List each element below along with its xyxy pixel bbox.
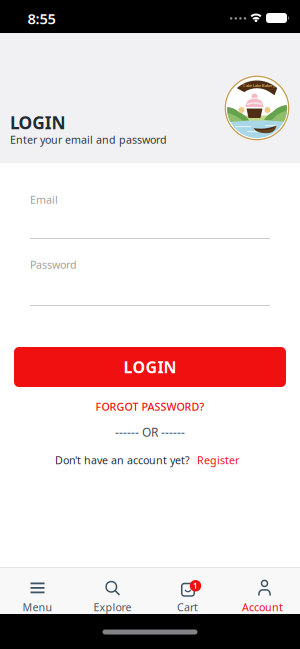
staticText: FORGOT PASSWORD? — [95, 399, 204, 414]
button[interactable]: Account — [225, 567, 300, 614]
button[interactable]: Register — [197, 453, 239, 467]
staticText: Email — [30, 192, 58, 207]
staticText: Account — [242, 600, 283, 614]
staticText: Password — [30, 257, 77, 272]
staticText: ------ OR ------ — [115, 424, 185, 440]
button[interactable]: LOGIN — [14, 347, 286, 387]
staticText: Explore — [93, 600, 131, 614]
staticText: Register — [197, 453, 239, 467]
staticText: LOGIN — [10, 111, 65, 134]
staticText: Cart — [177, 600, 198, 614]
button[interactable]: Menu — [0, 567, 75, 614]
button[interactable]: Explore — [75, 567, 150, 614]
button[interactable]: FORGOT PASSWORD? — [0, 400, 300, 413]
staticText: Enter your email and password — [10, 132, 167, 147]
staticText: 8:55 — [27, 9, 55, 28]
staticText: Menu — [22, 600, 52, 614]
staticText: Cake Lake Bakery — [243, 83, 275, 88]
staticText: LOGIN — [123, 356, 176, 378]
staticText: Don't have an account yet? — [55, 453, 190, 467]
button[interactable]: 1 — [150, 567, 225, 614]
staticText: 1 — [193, 580, 198, 591]
